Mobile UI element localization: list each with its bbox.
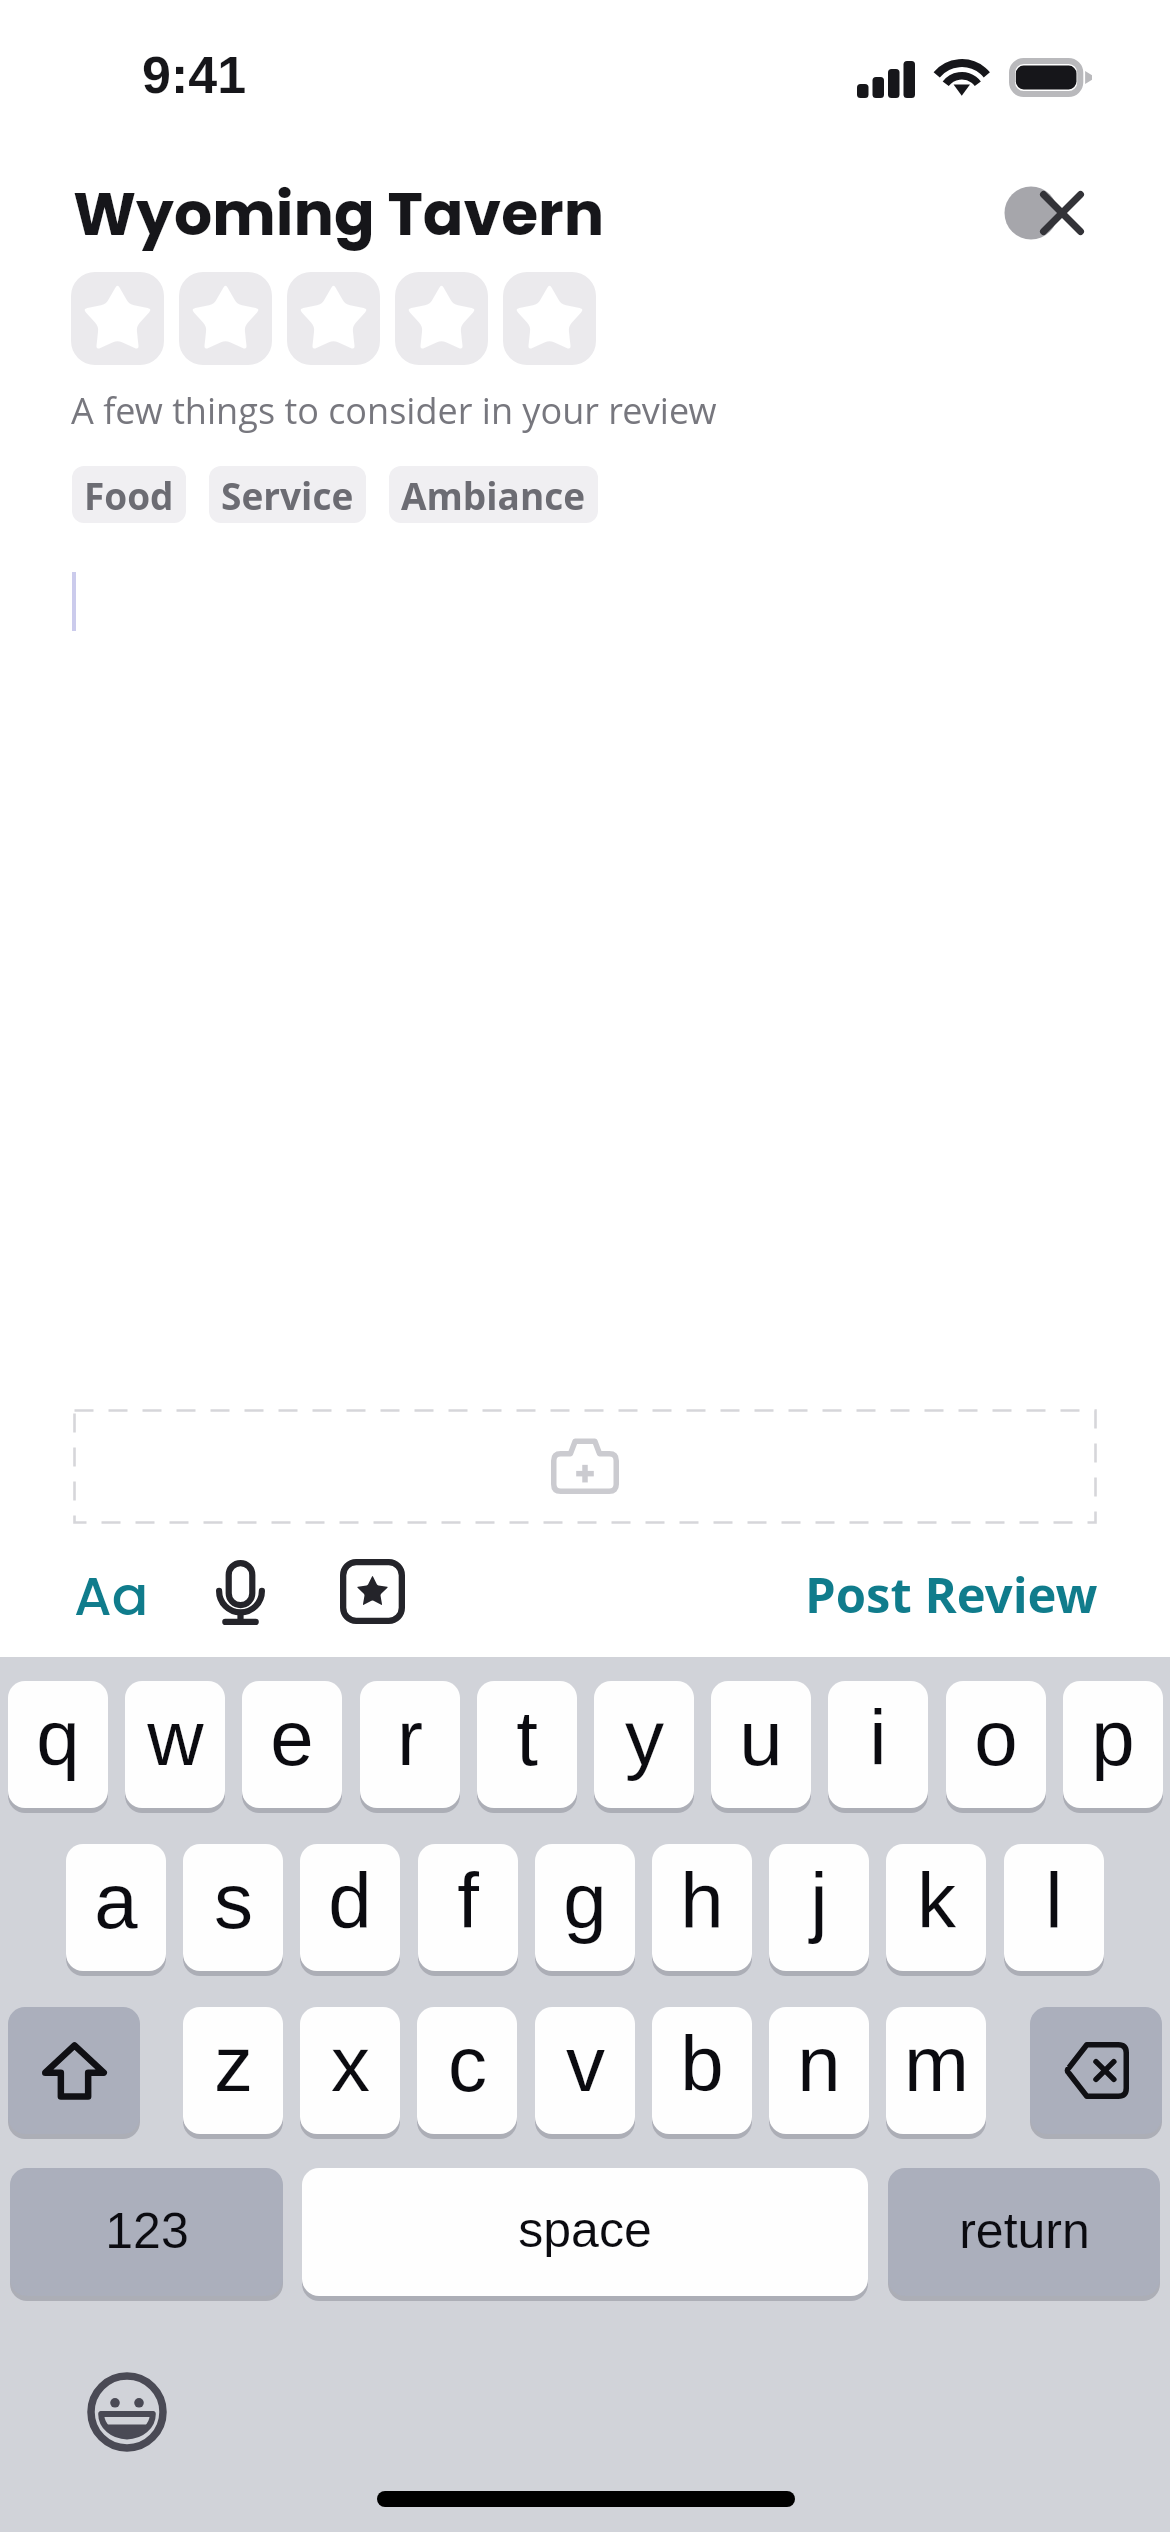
- button[interactable]: v: [535, 2007, 635, 2134]
- button[interactable]: Shift: [8, 2007, 140, 2134]
- staticText: k: [917, 1857, 956, 1944]
- button[interactable]: return: [888, 2168, 1160, 2296]
- staticText: Wyoming Tavern: [73, 172, 605, 256]
- staticText: Ambiance: [401, 470, 586, 520]
- button[interactable]: Backspace: [1030, 2007, 1162, 2134]
- staticText: space: [518, 2202, 652, 2258]
- button[interactable]: b: [652, 2007, 752, 2134]
- staticText: Aa: [74, 1558, 149, 1634]
- button[interactable]: Rate 4 star: [395, 272, 488, 365]
- staticText: n: [797, 2020, 841, 2107]
- staticText: 123: [105, 2203, 189, 2259]
- staticText: a: [94, 1857, 138, 1944]
- button[interactable]: Voice input: [191, 1547, 289, 1639]
- button[interactable]: Rate 5 star: [503, 272, 596, 365]
- staticText: z: [214, 2020, 253, 2107]
- button[interactable]: a: [66, 1844, 166, 1971]
- staticText: f: [457, 1857, 479, 1944]
- button[interactable]: c: [417, 2007, 517, 2134]
- staticText: y: [625, 1694, 664, 1781]
- staticText: o: [974, 1694, 1018, 1781]
- button[interactable]: f: [418, 1844, 518, 1971]
- button[interactable]: Service: [209, 466, 366, 523]
- button[interactable]: Post Review: [803, 1557, 1099, 1631]
- staticText: b: [680, 2020, 724, 2107]
- button[interactable]: z: [183, 2007, 283, 2134]
- button[interactable]: g: [535, 1844, 635, 1971]
- staticText: j: [810, 1857, 828, 1944]
- button[interactable]: p: [1063, 1681, 1163, 1808]
- button[interactable]: u: [711, 1681, 811, 1808]
- button[interactable]: w: [125, 1681, 225, 1808]
- staticText: h: [680, 1857, 724, 1944]
- staticText: q: [36, 1694, 80, 1781]
- button[interactable]: x: [300, 2007, 400, 2134]
- staticText: 9:41: [142, 46, 247, 104]
- button[interactable]: Add photo: [73, 1409, 1097, 1524]
- button[interactable]: Sticker: [340, 1559, 405, 1624]
- button[interactable]: k: [886, 1844, 986, 1971]
- button[interactable]: o: [946, 1681, 1046, 1808]
- staticText: d: [328, 1857, 372, 1944]
- button[interactable]: m: [886, 2007, 986, 2134]
- staticText: e: [270, 1694, 314, 1781]
- staticText: r: [397, 1694, 423, 1781]
- button[interactable]: i: [828, 1681, 928, 1808]
- button[interactable]: Emoji keyboard: [87, 2372, 167, 2452]
- staticText: i: [869, 1694, 887, 1781]
- button[interactable]: r: [360, 1681, 460, 1808]
- staticText: s: [214, 1857, 253, 1944]
- button[interactable]: space: [302, 2168, 868, 2296]
- button[interactable]: q: [8, 1681, 108, 1808]
- button[interactable]: l: [1004, 1844, 1104, 1971]
- staticText: Service: [221, 470, 354, 520]
- staticText: A few things to consider in your review: [71, 386, 717, 435]
- button[interactable]: h: [652, 1844, 752, 1971]
- button[interactable]: Food: [72, 466, 186, 523]
- staticText: c: [448, 2020, 487, 2107]
- button[interactable]: e: [242, 1681, 342, 1808]
- staticText: v: [566, 2020, 605, 2107]
- button[interactable]: s: [183, 1844, 283, 1971]
- button[interactable]: Ambiance: [389, 466, 598, 523]
- staticText: m: [904, 2020, 969, 2107]
- button[interactable]: Close: [985, 157, 1100, 269]
- button[interactable]: j: [769, 1844, 869, 1971]
- staticText: g: [563, 1857, 607, 1944]
- staticText: Post Review: [805, 1561, 1098, 1628]
- staticText: x: [331, 2020, 370, 2107]
- staticText: return: [959, 2203, 1090, 2259]
- button[interactable]: d: [300, 1844, 400, 1971]
- staticText: l: [1045, 1857, 1063, 1944]
- staticText: u: [739, 1694, 783, 1781]
- button[interactable]: y: [594, 1681, 694, 1808]
- button[interactable]: Aa: [66, 1552, 156, 1640]
- button[interactable]: Rate 3 star: [287, 272, 380, 365]
- staticText: p: [1091, 1694, 1135, 1781]
- button[interactable]: t: [477, 1681, 577, 1808]
- button[interactable]: Rate 2 star: [179, 272, 272, 365]
- button[interactable]: 123: [10, 2168, 283, 2296]
- staticText: t: [516, 1694, 538, 1781]
- button[interactable]: Rate 1 star: [71, 272, 164, 365]
- button[interactable]: n: [769, 2007, 869, 2134]
- staticText: Food: [84, 470, 174, 520]
- staticText: w: [147, 1694, 204, 1781]
